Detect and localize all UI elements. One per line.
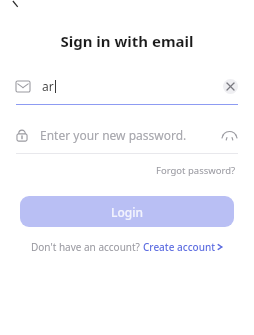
button[interactable]: ar [16,73,238,105]
staticText: Forgot password? [156,164,236,177]
staticText: Sign in with email [0,31,254,51]
staticText: Login [111,204,143,220]
staticText: Don't have an account? [31,240,143,254]
button[interactable]: Login [20,196,234,227]
button[interactable]: Enter your new password. [16,122,238,154]
button[interactable]: Create account [143,240,223,254]
button[interactable]: Forgot password? [154,162,238,179]
button[interactable]: Show password [220,126,238,144]
button[interactable]: Clear email [223,79,238,94]
staticText: Enter your new password. [40,127,187,143]
staticText: ar [42,78,54,94]
staticText: Create account [143,240,216,254]
